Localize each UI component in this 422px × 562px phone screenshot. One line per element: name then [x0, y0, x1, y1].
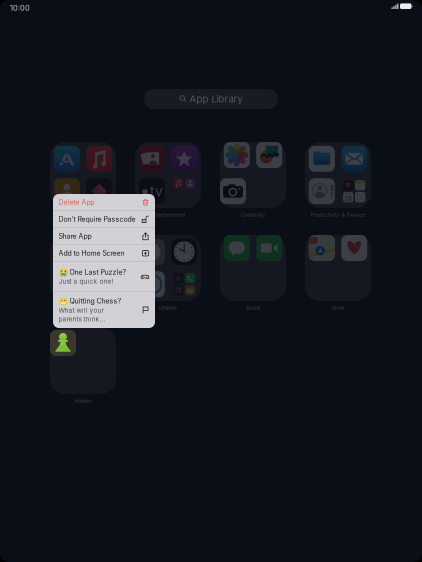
- button[interactable]: Delete App: [53, 194, 155, 210]
- staticText: App Library: [189, 93, 242, 105]
- staticText: One Last Puzzle?: [69, 268, 126, 276]
- staticText: 10:00: [10, 4, 30, 13]
- staticText: Don't Require Passcode: [58, 215, 135, 223]
- staticText: 😬: [58, 297, 67, 305]
- staticText: Share App: [58, 232, 91, 240]
- staticText: tv: [150, 183, 163, 200]
- staticText: parents think...: [58, 315, 105, 323]
- staticText: Add to Home Screen: [58, 249, 124, 257]
- staticText: Entertainment: [65, 211, 100, 218]
- staticText: Social: [246, 304, 260, 311]
- staticText: 26: [344, 195, 352, 202]
- button[interactable]: Share App: [53, 228, 155, 244]
- staticText: MON: [345, 192, 351, 195]
- staticText: Hidden: [74, 397, 91, 404]
- staticText: 😭: [58, 268, 67, 276]
- staticText: Utilities: [159, 304, 177, 311]
- staticText: Quitting Chess?: [69, 297, 121, 305]
- button[interactable]: 😭: [53, 262, 155, 291]
- staticText: Entertainment: [150, 211, 185, 218]
- button[interactable]: Don't Require Passcode: [53, 211, 155, 227]
- staticText: Other: [331, 304, 345, 311]
- staticText: Productivity & Finance: [310, 211, 365, 218]
- staticText: Utilities: [74, 304, 92, 311]
- button[interactable]: App Library: [144, 89, 278, 109]
- staticText: Just a quick one!: [58, 277, 113, 285]
- staticText: Creativity: [241, 211, 265, 218]
- staticText: What will your: [58, 306, 103, 314]
- staticText: Delete App: [58, 198, 94, 206]
- button[interactable]: 😬: [53, 292, 155, 328]
- button[interactable]: Add to Home Screen: [53, 245, 155, 261]
